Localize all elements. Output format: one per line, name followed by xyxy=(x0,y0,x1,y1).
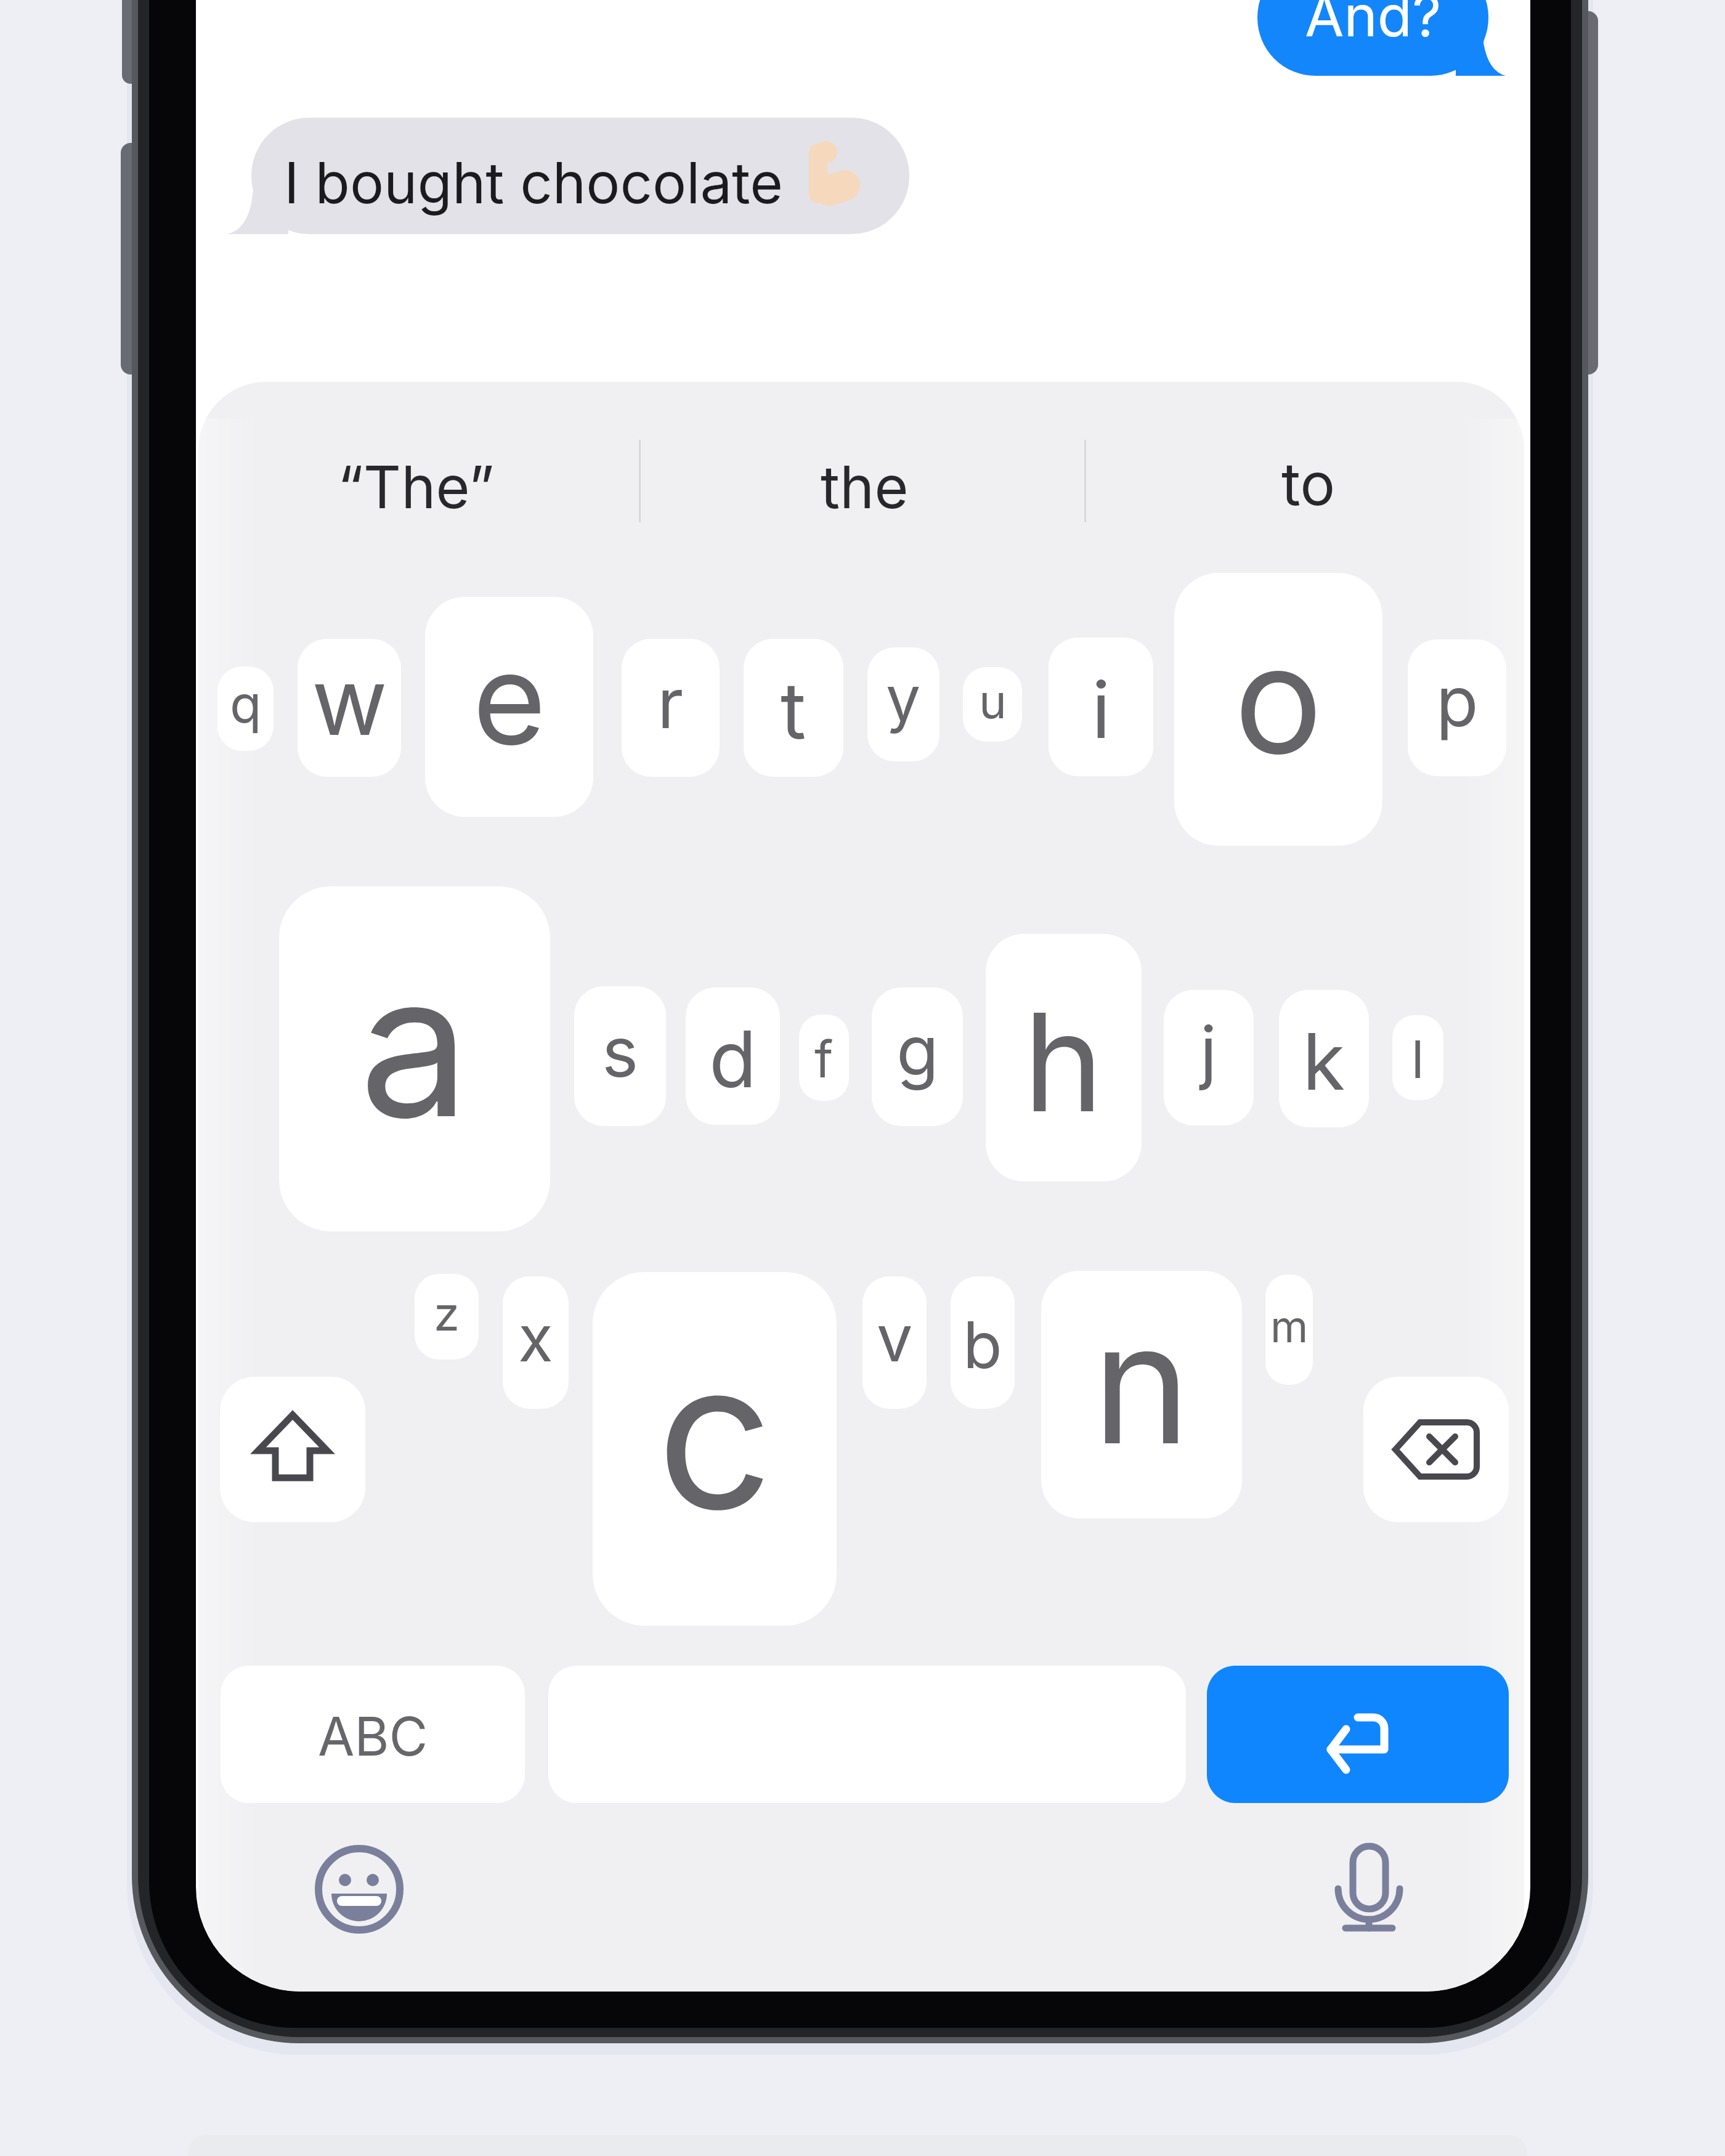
button[interactable]: n xyxy=(1041,1271,1242,1518)
staticText: l xyxy=(1411,1028,1424,1091)
button[interactable]: s xyxy=(574,986,666,1126)
button[interactable] xyxy=(1207,1666,1509,1803)
staticText: c xyxy=(657,1311,773,1557)
button[interactable] xyxy=(1363,1377,1509,1522)
staticText: n xyxy=(1092,1282,1191,1483)
button[interactable]: I bought chocolate xyxy=(251,118,909,234)
staticText: a xyxy=(359,925,470,1164)
button[interactable]: f xyxy=(799,1015,849,1101)
button[interactable]: k xyxy=(1279,990,1369,1127)
staticText: to xyxy=(1281,448,1336,519)
staticText: the xyxy=(821,452,909,522)
staticText: s xyxy=(602,1010,639,1093)
staticText: g xyxy=(896,1008,939,1092)
button[interactable]: j xyxy=(1164,990,1254,1125)
staticText: m xyxy=(1270,1300,1309,1353)
staticText: j xyxy=(1200,1009,1217,1093)
staticText: v xyxy=(877,1299,913,1377)
button[interactable]: e xyxy=(425,597,593,817)
staticText: e xyxy=(473,622,546,774)
staticText: y xyxy=(886,661,921,736)
staticText: u xyxy=(979,673,1007,729)
button[interactable]: i xyxy=(1049,638,1153,776)
button[interactable]: z xyxy=(415,1274,479,1360)
button[interactable]: r xyxy=(622,639,720,777)
button[interactable]: And? xyxy=(1257,0,1488,76)
button[interactable]: o xyxy=(1174,573,1382,846)
button[interactable]: “The” xyxy=(245,428,587,545)
button[interactable]: u xyxy=(963,667,1022,742)
staticText: r xyxy=(657,661,684,745)
button[interactable]: q xyxy=(217,667,274,751)
button[interactable]: h xyxy=(986,934,1142,1181)
button[interactable]: b xyxy=(951,1276,1015,1409)
staticText: t xyxy=(781,663,806,757)
button[interactable]: d xyxy=(686,987,780,1125)
button[interactable] xyxy=(1332,1842,1406,1947)
button[interactable]: v xyxy=(862,1276,927,1409)
button[interactable]: ABC xyxy=(221,1666,525,1803)
staticText: f xyxy=(814,1029,834,1090)
button[interactable] xyxy=(220,1377,365,1522)
button[interactable]: w xyxy=(298,639,401,777)
button[interactable]: y xyxy=(867,647,940,761)
staticText: o xyxy=(1234,609,1323,788)
staticText: I bought chocolate xyxy=(284,148,783,217)
staticText: z xyxy=(434,1285,460,1342)
staticText: “The” xyxy=(338,452,495,522)
staticText: h xyxy=(1023,980,1104,1144)
staticText: p xyxy=(1436,659,1479,743)
staticText: ABC xyxy=(318,1704,428,1769)
staticText: q xyxy=(230,673,262,736)
button[interactable]: l xyxy=(1392,1015,1443,1100)
staticText: d xyxy=(709,1012,757,1106)
button[interactable]: a xyxy=(279,886,550,1231)
staticText: k xyxy=(1302,1015,1345,1108)
staticText: i xyxy=(1092,663,1111,756)
button[interactable]: t xyxy=(744,639,843,777)
button[interactable]: to xyxy=(1225,428,1392,545)
button[interactable]: g xyxy=(872,987,963,1126)
staticText: w xyxy=(312,646,388,757)
staticText: And? xyxy=(1305,0,1442,50)
button[interactable]: c xyxy=(593,1272,837,1626)
button[interactable]: x xyxy=(503,1276,569,1409)
staticText: b xyxy=(963,1306,1002,1384)
button[interactable]: p xyxy=(1408,639,1506,776)
button[interactable]: m xyxy=(1265,1275,1313,1385)
staticText: x xyxy=(518,1299,553,1377)
button[interactable]: the xyxy=(752,428,977,545)
button[interactable] xyxy=(310,1840,408,1939)
